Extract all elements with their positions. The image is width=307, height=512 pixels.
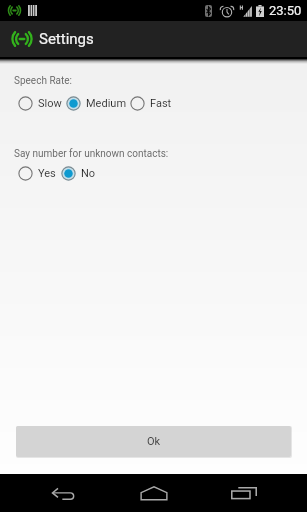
button[interactable]: Medium — [66, 96, 127, 111]
staticText: Yes — [38, 167, 56, 180]
staticText: No — [81, 167, 96, 180]
button[interactable]: Fast — [130, 96, 172, 111]
button[interactable]: Slow — [18, 96, 62, 111]
staticText: Settings — [39, 30, 94, 48]
staticText: Ok — [147, 435, 161, 448]
button[interactable]: Yes — [18, 166, 56, 181]
button[interactable]: Back — [32, 474, 94, 512]
staticText: 23:50 — [269, 3, 302, 18]
staticText: Fast — [150, 97, 172, 110]
button[interactable]: Ok — [16, 426, 291, 457]
button[interactable]: No — [61, 166, 96, 181]
staticText: Slow — [38, 97, 62, 110]
staticText: Say number for unknown contacts: — [14, 148, 169, 160]
staticText: Speech Rate: — [14, 75, 72, 87]
staticText: Medium — [86, 97, 127, 110]
button[interactable]: Home — [123, 474, 185, 512]
button[interactable]: Recent apps — [213, 474, 275, 512]
